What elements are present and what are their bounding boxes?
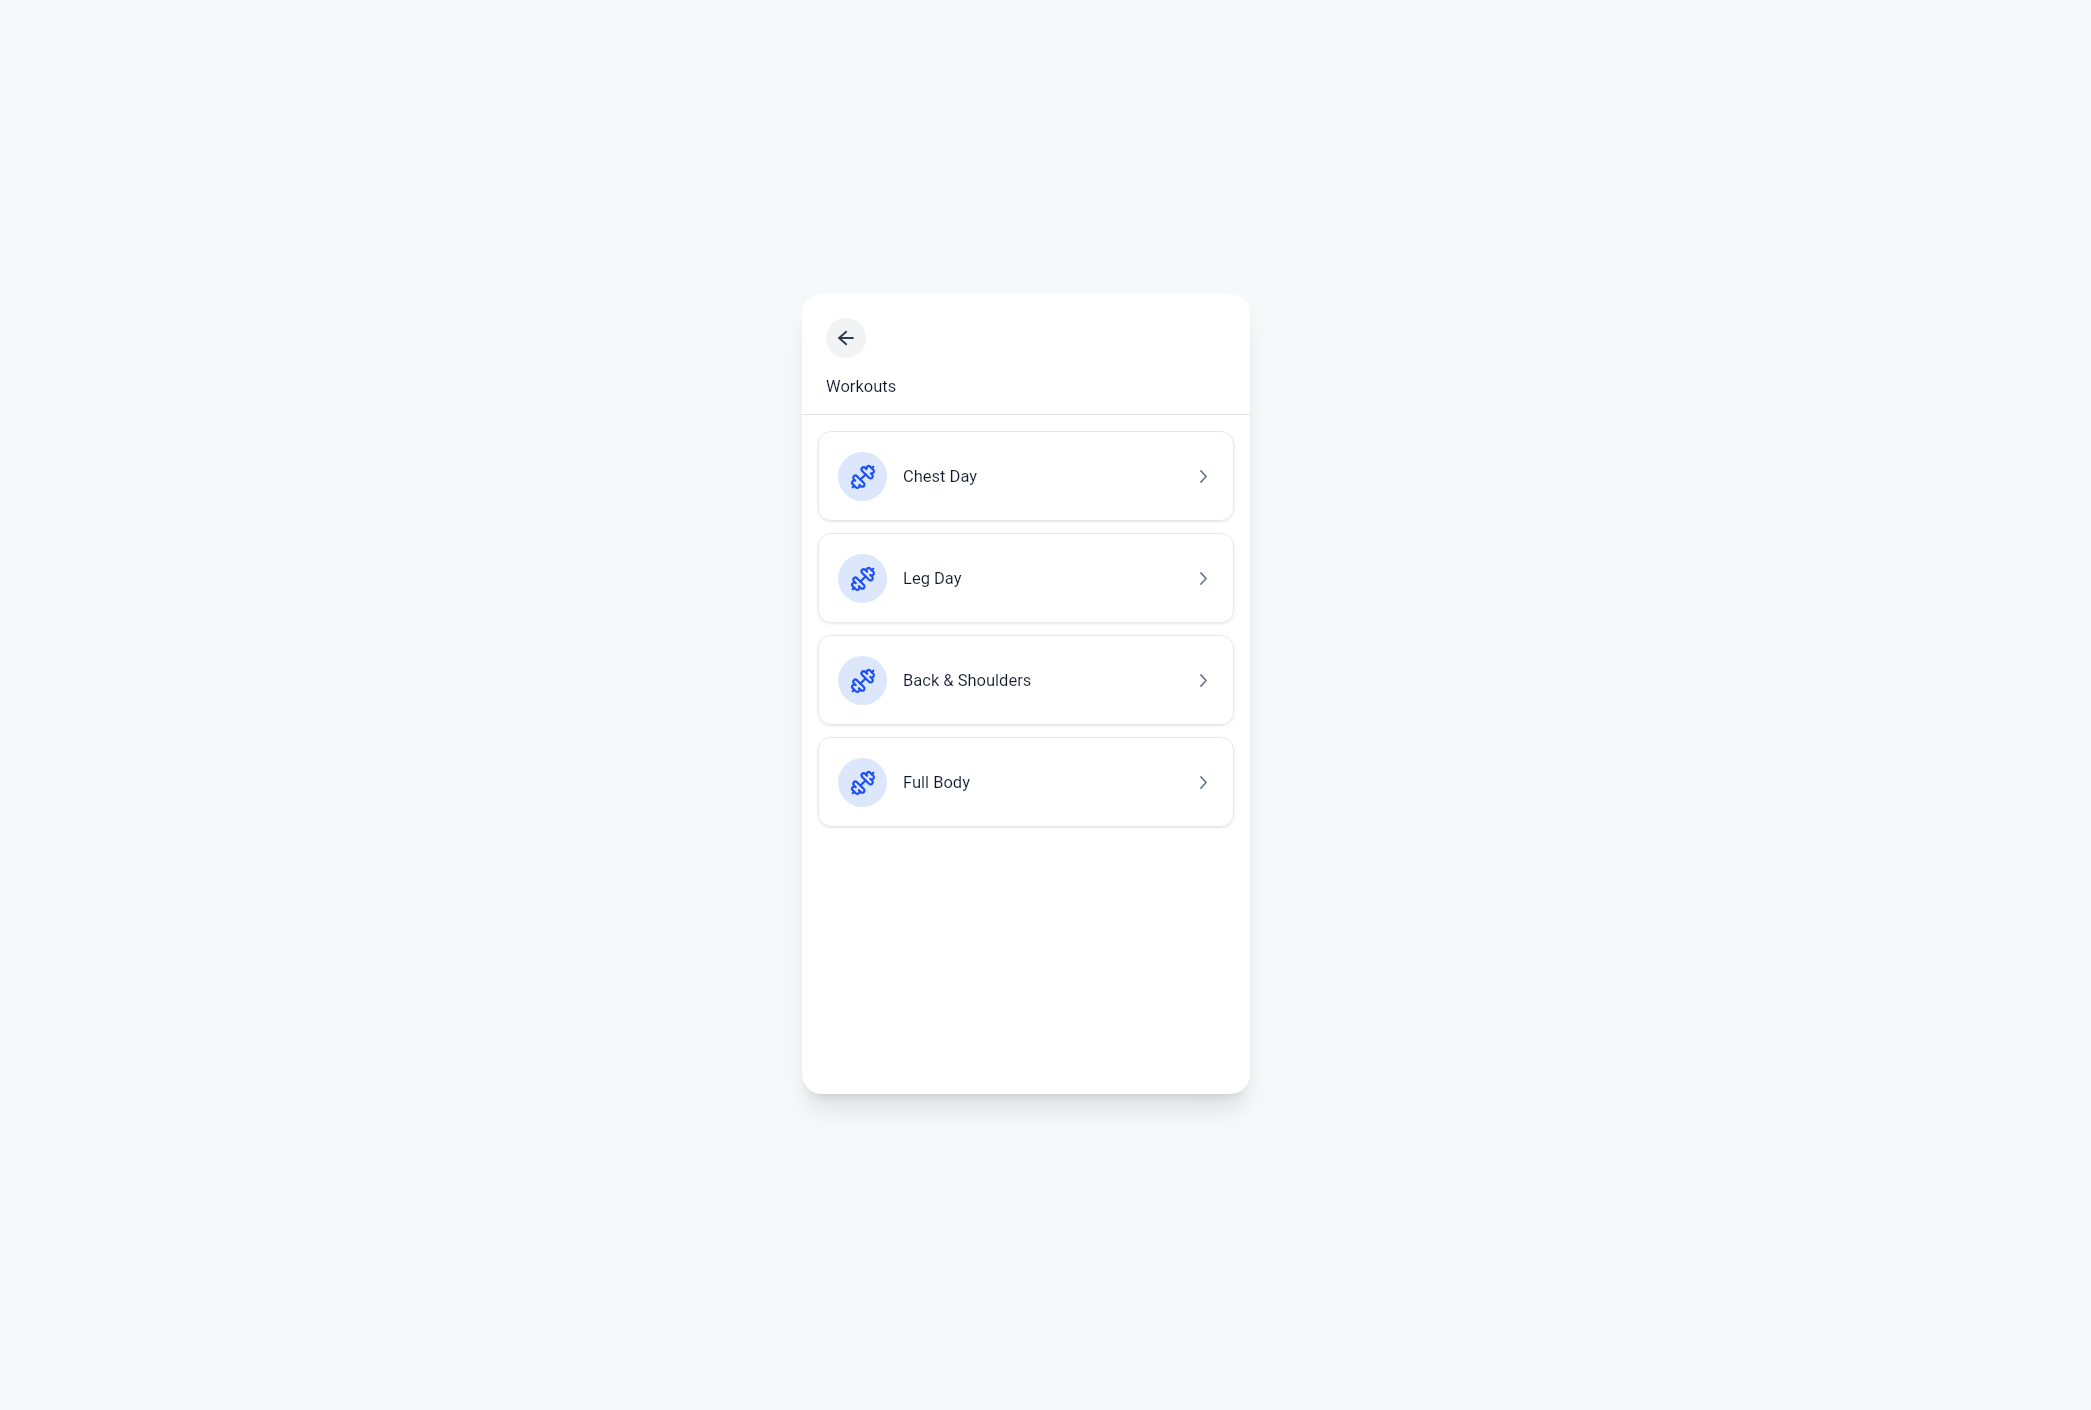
button[interactable]: Back <box>826 318 866 358</box>
button[interactable]: Back & Shoulders <box>818 635 1234 725</box>
staticText: Chest Day <box>903 467 978 486</box>
staticText: Leg Day <box>903 569 962 588</box>
button[interactable]: Chest Day <box>818 431 1234 521</box>
staticText: Workouts <box>826 377 897 396</box>
button[interactable]: Full Body <box>818 737 1234 827</box>
staticText: Full Body <box>903 773 970 792</box>
button[interactable]: Leg Day <box>818 533 1234 623</box>
staticText: Back & Shoulders <box>903 671 1032 690</box>
